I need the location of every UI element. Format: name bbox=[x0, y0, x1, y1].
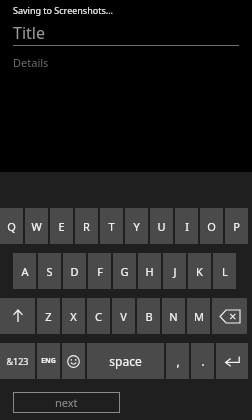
button[interactable]: F bbox=[88, 253, 111, 289]
staticText: N bbox=[169, 309, 178, 324]
button[interactable]: space bbox=[87, 343, 164, 379]
button[interactable]: D bbox=[63, 253, 86, 289]
staticText: K bbox=[196, 264, 203, 279]
button[interactable]: , bbox=[166, 343, 189, 379]
staticText: O bbox=[207, 219, 216, 234]
staticText: F bbox=[97, 264, 103, 279]
button[interactable]: Enter bbox=[216, 343, 248, 379]
button[interactable]: O bbox=[200, 208, 223, 244]
staticText: Details bbox=[13, 55, 49, 70]
staticText: H bbox=[145, 264, 154, 279]
staticText: next bbox=[55, 395, 78, 410]
button[interactable]: Emoji bbox=[62, 343, 85, 379]
staticText: T bbox=[108, 219, 115, 234]
button[interactable]: C bbox=[87, 298, 110, 334]
staticText: Saving to Screenshots... bbox=[13, 4, 113, 16]
button[interactable]: Q bbox=[0, 208, 23, 244]
staticText: X bbox=[70, 309, 77, 324]
button[interactable]: Z bbox=[37, 298, 60, 334]
staticText: J bbox=[173, 264, 177, 279]
staticText: Z bbox=[45, 309, 52, 324]
button[interactable]: W bbox=[25, 208, 48, 244]
staticText: space bbox=[109, 353, 142, 369]
staticText: S bbox=[46, 264, 53, 279]
button[interactable]: K bbox=[188, 253, 211, 289]
button[interactable]: I bbox=[175, 208, 198, 244]
staticText: U bbox=[157, 219, 166, 234]
staticText: D bbox=[70, 264, 79, 279]
button[interactable]: H bbox=[138, 253, 161, 289]
staticText: V bbox=[120, 309, 127, 324]
staticText: W bbox=[31, 219, 42, 234]
button[interactable]: Shift bbox=[0, 298, 35, 334]
button[interactable]: B bbox=[137, 298, 160, 334]
staticText: Q bbox=[7, 219, 16, 234]
staticText: G bbox=[120, 264, 129, 279]
staticText: I bbox=[185, 219, 189, 234]
button[interactable]: Backspace bbox=[212, 298, 247, 334]
button[interactable]: . bbox=[191, 343, 214, 379]
staticText: C bbox=[95, 309, 102, 324]
button[interactable]: R bbox=[75, 208, 98, 244]
button[interactable]: Y bbox=[125, 208, 148, 244]
button[interactable]: ENG bbox=[37, 343, 60, 379]
staticText: &123 bbox=[6, 355, 29, 367]
staticText: . bbox=[201, 353, 205, 369]
button[interactable]: J bbox=[163, 253, 186, 289]
button[interactable]: E bbox=[50, 208, 73, 244]
button[interactable]: &123 bbox=[0, 343, 35, 379]
button[interactable]: N bbox=[162, 298, 185, 334]
staticText: A bbox=[21, 264, 29, 279]
button[interactable]: next bbox=[13, 392, 120, 413]
button[interactable]: T bbox=[100, 208, 123, 244]
staticText: Title bbox=[13, 22, 45, 44]
button[interactable]: U bbox=[150, 208, 173, 244]
button[interactable]: X bbox=[62, 298, 85, 334]
button[interactable]: A bbox=[13, 253, 36, 289]
staticText: P bbox=[233, 219, 240, 234]
staticText: B bbox=[145, 309, 153, 324]
staticText: R bbox=[83, 219, 90, 234]
staticText: L bbox=[222, 264, 228, 279]
button[interactable]: Title bbox=[0, 21, 252, 45]
staticText: E bbox=[58, 219, 65, 234]
button[interactable]: Details bbox=[0, 52, 252, 72]
staticText: ENG bbox=[41, 356, 56, 366]
staticText: , bbox=[176, 353, 180, 369]
button[interactable]: G bbox=[113, 253, 136, 289]
button[interactable]: L bbox=[213, 253, 236, 289]
button[interactable]: P bbox=[225, 208, 248, 244]
staticText: M bbox=[194, 309, 204, 324]
staticText: Y bbox=[133, 219, 140, 234]
button[interactable]: M bbox=[187, 298, 210, 334]
button[interactable]: V bbox=[112, 298, 135, 334]
button[interactable]: S bbox=[38, 253, 61, 289]
